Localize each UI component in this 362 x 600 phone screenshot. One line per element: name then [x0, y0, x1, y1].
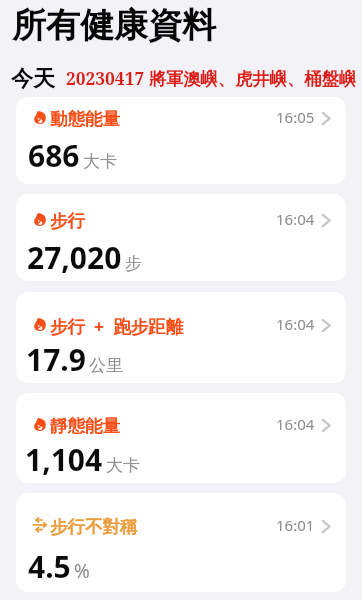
staticText: 16:04 [276, 314, 315, 334]
staticText: 大卡 [106, 455, 140, 476]
staticText: 動態能量 [50, 108, 120, 130]
staticText: 公里 [89, 355, 123, 376]
staticText: 步行 [50, 210, 85, 232]
staticText: 4.5 [28, 546, 71, 587]
staticText: 所有健康資料 [12, 4, 216, 47]
staticText: 步行 + 跑步距離 [50, 314, 184, 338]
staticText: 20230417 將軍澳嶼、虎井嶼、桶盤嶼 [66, 67, 357, 91]
staticText: % [74, 558, 90, 584]
staticText: 靜態能量 [50, 415, 120, 437]
staticText: 步行不對稱 [50, 516, 138, 538]
staticText: 大卡 [83, 151, 117, 172]
staticText: 27,020 [27, 237, 122, 278]
staticText: 686 [28, 135, 80, 176]
button[interactable]: 步行 + 跑步距離 [16, 292, 346, 383]
staticText: 16:05 [276, 107, 315, 127]
staticText: 1,104 [25, 439, 103, 480]
staticText: 17.9 [26, 339, 86, 380]
staticText: 16:01 [276, 515, 315, 535]
button[interactable]: 動態能量 [16, 97, 346, 184]
staticText: 步 [125, 253, 142, 274]
staticText: 今天 [11, 65, 55, 93]
button[interactable]: 靜態能量 [16, 393, 346, 483]
staticText: 16:04 [276, 209, 315, 229]
button[interactable]: 步行 [16, 194, 346, 281]
button[interactable]: 步行不對稱 [16, 493, 346, 592]
staticText: 16:04 [276, 414, 315, 434]
